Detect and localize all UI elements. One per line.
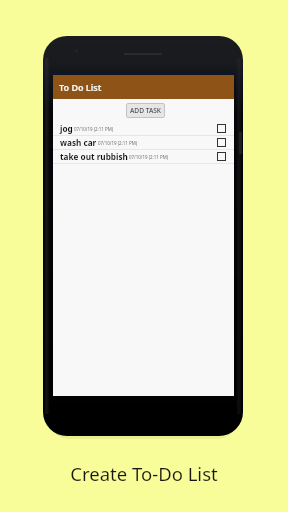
staticText: jog [60,123,73,134]
button[interactable]: Toggle task complete [217,152,226,161]
staticText: Create To-Do List [70,461,218,486]
button[interactable]: ADD TASK [126,103,165,118]
staticText: 07/10/19 (2:11 PM) [98,140,138,146]
staticText: To Do List [59,81,102,93]
button[interactable]: take out rubbish [53,150,234,164]
button[interactable]: jog [53,122,234,136]
button[interactable]: wash car [53,136,234,150]
button[interactable]: To Do List [53,75,234,99]
button[interactable]: Toggle task complete [217,124,226,133]
button[interactable]: Toggle task complete [217,138,226,147]
staticText: 07/10/19 (2:11 PM) [74,126,114,132]
staticText: 07/10/19 (2:11 PM) [129,154,169,160]
staticText: ADD TASK [130,106,162,115]
staticText: take out rubbish [60,151,128,162]
staticText: wash car [60,137,97,148]
